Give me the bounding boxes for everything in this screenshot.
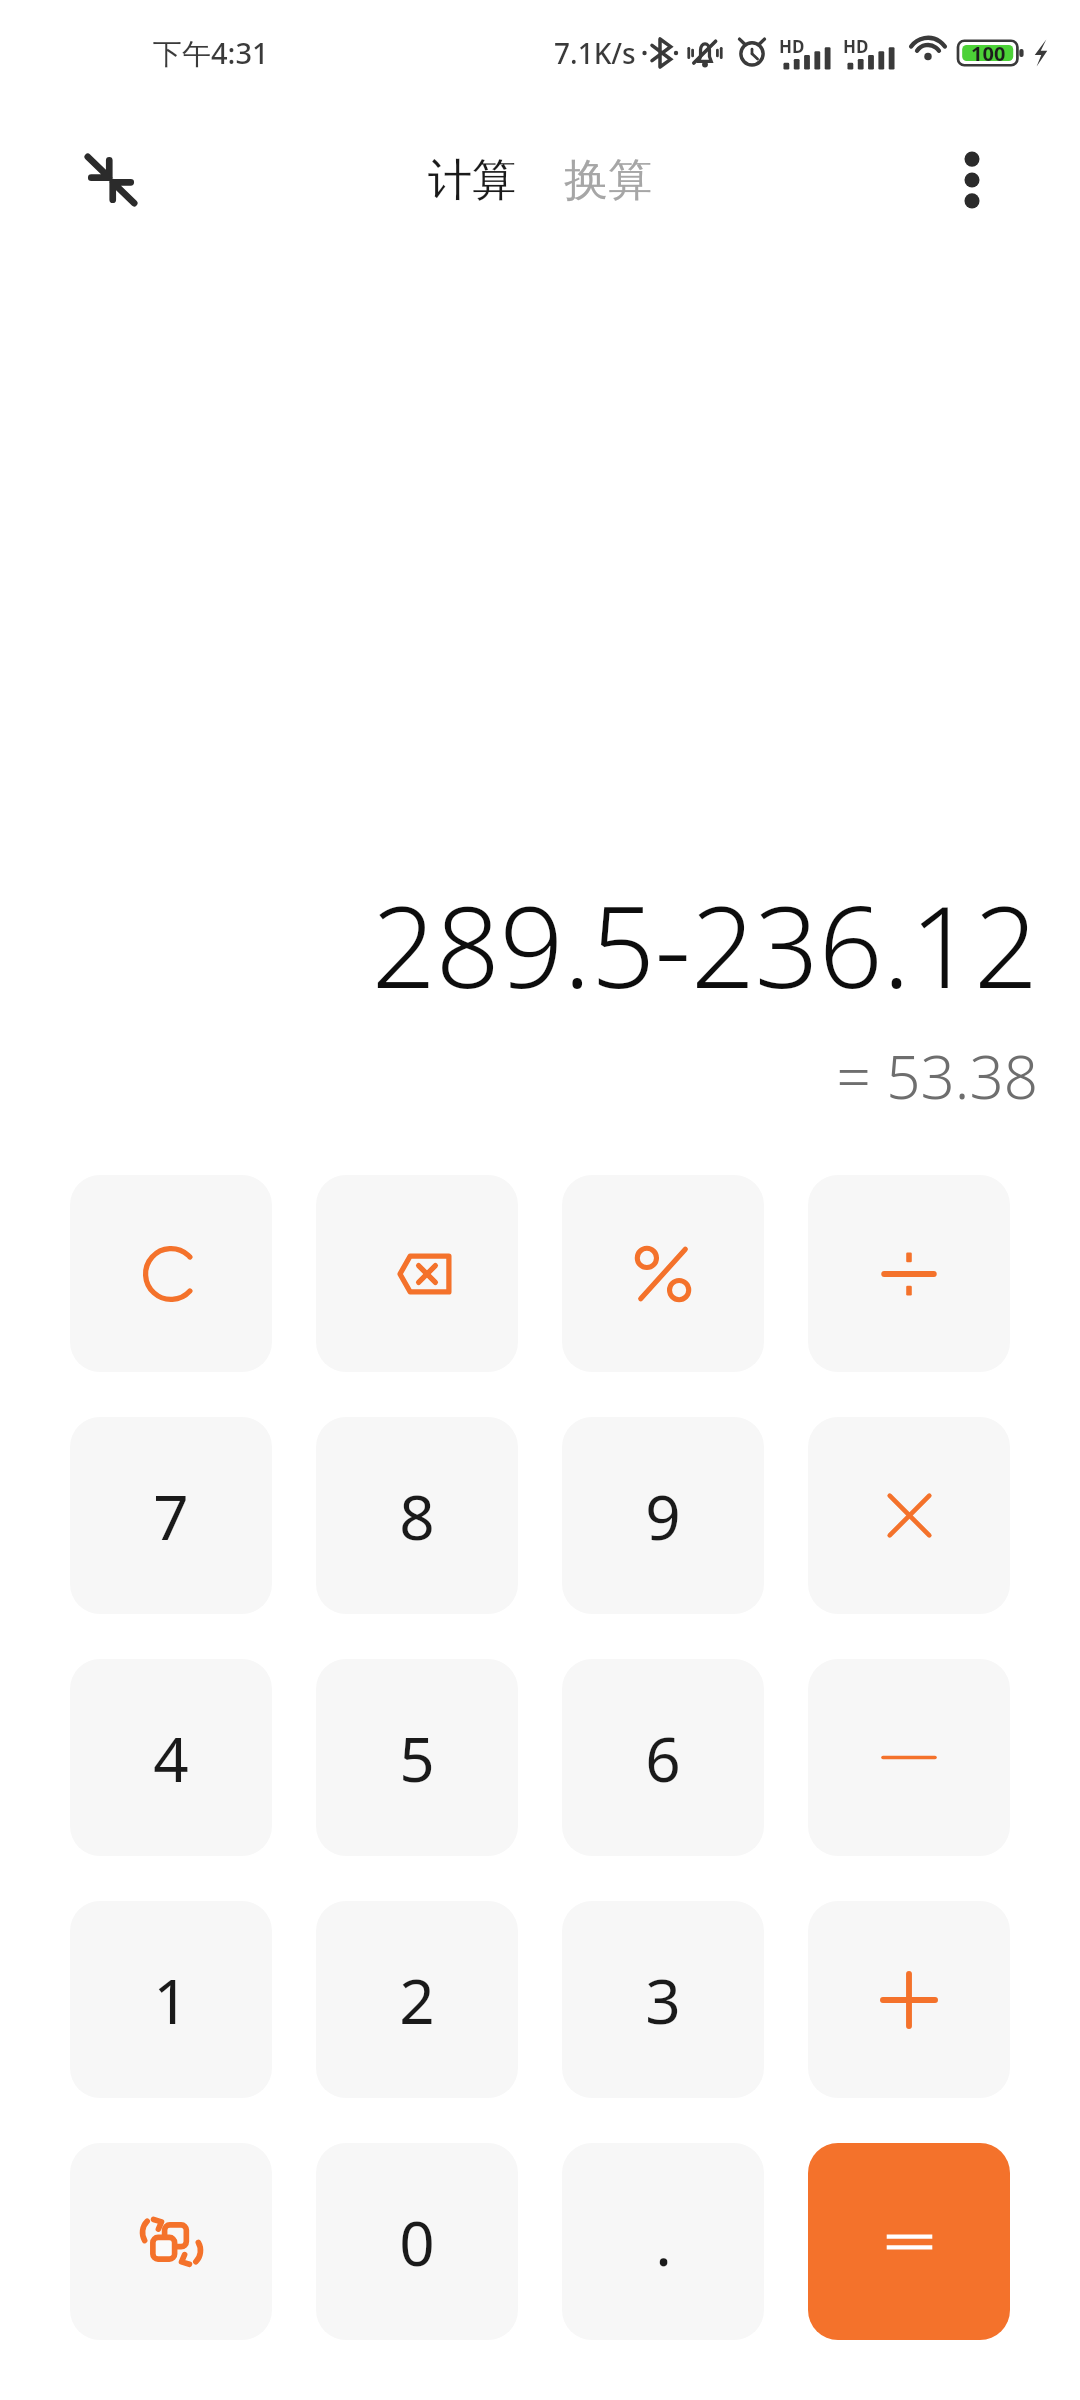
button[interactable]: Multiply <box>808 1417 1010 1614</box>
staticText: 7 <box>153 1474 189 1558</box>
button[interactable]: 7 <box>70 1417 272 1614</box>
staticText: 8 <box>399 1474 435 1558</box>
staticText: HD <box>843 35 869 58</box>
button[interactable]: Divide <box>808 1175 1010 1372</box>
staticText: 2 <box>399 1958 435 2042</box>
button[interactable]: 6 <box>562 1659 764 1856</box>
staticText: 4 <box>153 1716 189 1800</box>
button[interactable]: 0 <box>316 2143 518 2340</box>
staticText: 0 <box>399 2200 435 2284</box>
button[interactable]: 5 <box>316 1659 518 1856</box>
button[interactable]: Equals <box>808 2143 1010 2340</box>
staticText: = 53.38 <box>836 1035 1038 1117</box>
staticText: 下午4:31 <box>153 33 269 73</box>
staticText: HD <box>779 35 805 58</box>
staticText: 6 <box>645 1716 681 1800</box>
button[interactable]: More options <box>922 130 1022 230</box>
staticText: 9 <box>645 1474 681 1558</box>
button[interactable]: Backspace <box>316 1175 518 1372</box>
staticText: 3 <box>645 1958 681 2042</box>
button[interactable]: 3 <box>562 1901 764 2098</box>
staticText: . <box>655 2200 672 2284</box>
button[interactable]: 2 <box>316 1901 518 2098</box>
button[interactable]: Percent <box>562 1175 764 1372</box>
button[interactable]: 9 <box>562 1417 764 1614</box>
staticText: 1 <box>153 1958 189 2042</box>
button[interactable]: 计算 <box>418 145 526 216</box>
button[interactable]: 换算 <box>554 145 662 216</box>
button[interactable]: Convert units <box>70 2143 272 2340</box>
staticText: 289.5-236.12 <box>371 868 1038 1021</box>
button[interactable]: Clear <box>70 1175 272 1372</box>
button[interactable]: 1 <box>70 1901 272 2098</box>
staticText: 7.1K/s <box>554 34 636 72</box>
staticText: 换算 <box>564 153 652 208</box>
staticText: 计算 <box>428 153 516 208</box>
button[interactable]: Minus <box>808 1659 1010 1856</box>
button[interactable]: 4 <box>70 1659 272 1856</box>
staticText: 100 <box>971 40 1006 67</box>
staticText: 5 <box>399 1716 435 1800</box>
button[interactable]: 8 <box>316 1417 518 1614</box>
button[interactable]: Plus <box>808 1901 1010 2098</box>
button[interactable]: Collapse <box>56 125 166 235</box>
button[interactable]: . <box>562 2143 764 2340</box>
